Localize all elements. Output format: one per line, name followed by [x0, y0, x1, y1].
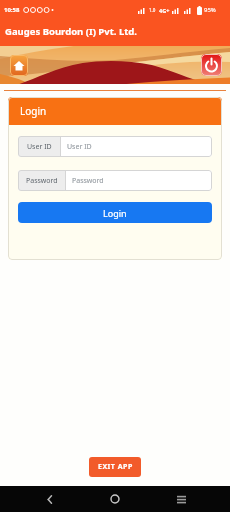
- button[interactable]: EXIT APP: [89, 457, 141, 477]
- staticText: User ID: [27, 142, 52, 152]
- button[interactable]: [35, 486, 65, 512]
- button[interactable]: [201, 54, 222, 76]
- staticText: Login: [103, 207, 127, 219]
- button[interactable]: [10, 55, 28, 76]
- button[interactable]: Login: [18, 202, 212, 223]
- button[interactable]: User ID: [18, 136, 212, 157]
- staticText: 1.0: [149, 7, 156, 13]
- staticText: Gauges Bourdon (I) Pvt. Ltd.: [5, 25, 138, 38]
- button[interactable]: [166, 486, 196, 512]
- button[interactable]: [100, 486, 130, 512]
- button[interactable]: Password: [18, 170, 212, 191]
- staticText: EXIT APP: [98, 462, 133, 472]
- staticText: 10:58: [4, 6, 20, 14]
- staticText: User ID: [67, 142, 92, 152]
- staticText: Password: [26, 176, 58, 186]
- staticText: 95%: [204, 6, 216, 14]
- staticText: Login: [20, 104, 47, 118]
- staticText: 4G+: [159, 7, 170, 14]
- staticText: Password: [72, 176, 104, 186]
